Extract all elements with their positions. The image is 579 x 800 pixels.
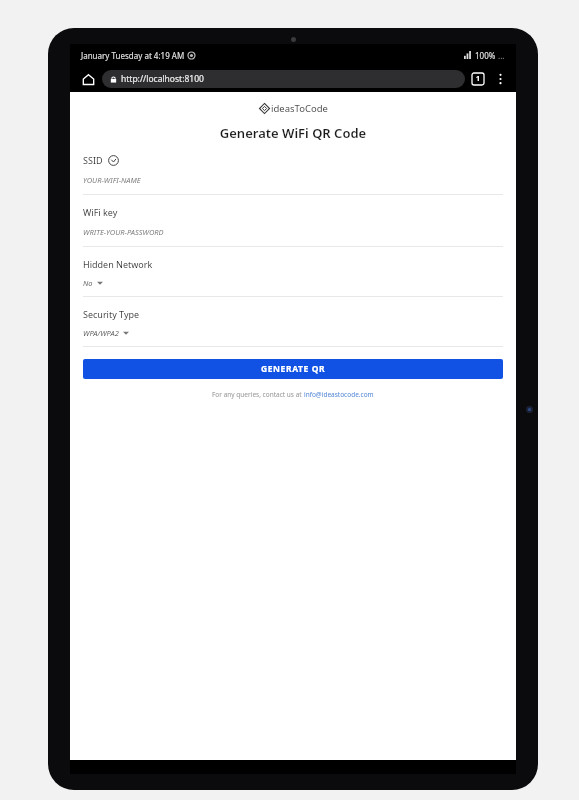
staticText: info@ideastocode.com: [304, 390, 374, 399]
button[interactable]: GENERATE QR: [83, 359, 503, 379]
staticText: SSID: [83, 154, 103, 166]
staticText: For any queries, contact us at: [212, 390, 304, 399]
staticText: WPA/WPA2: [83, 328, 119, 338]
staticText: http://localhost:8100: [121, 73, 204, 85]
button[interactable]: WPA/WPA2: [83, 328, 503, 338]
staticText: WiFi key: [83, 206, 118, 218]
staticText: ...: [498, 50, 505, 61]
button[interactable]: Home: [78, 69, 98, 89]
staticText: Hidden Network: [83, 258, 153, 270]
button[interactable]: More options: [492, 71, 508, 87]
button[interactable]: Tabs: [472, 73, 484, 85]
staticText: 100%: [475, 50, 496, 61]
button[interactable]: info@ideastocode.com: [304, 390, 374, 399]
button[interactable]: SSID info: [108, 155, 119, 166]
button[interactable]: WRITE-YOUR-PASSWORD: [83, 227, 503, 237]
staticText: ideasToCode: [271, 102, 328, 115]
staticText: No: [83, 278, 93, 288]
button[interactable]: No: [83, 278, 503, 288]
staticText: January Tuesday at 4:19 AM: [81, 50, 185, 61]
button[interactable]: YOUR-WIFI-NAME: [83, 175, 503, 185]
staticText: GENERATE QR: [261, 363, 326, 375]
staticText: 1: [476, 74, 481, 84]
staticText: Generate WiFi QR Code: [70, 124, 516, 142]
staticText: Security Type: [83, 308, 140, 320]
button[interactable]: http://localhost:8100: [102, 70, 465, 88]
